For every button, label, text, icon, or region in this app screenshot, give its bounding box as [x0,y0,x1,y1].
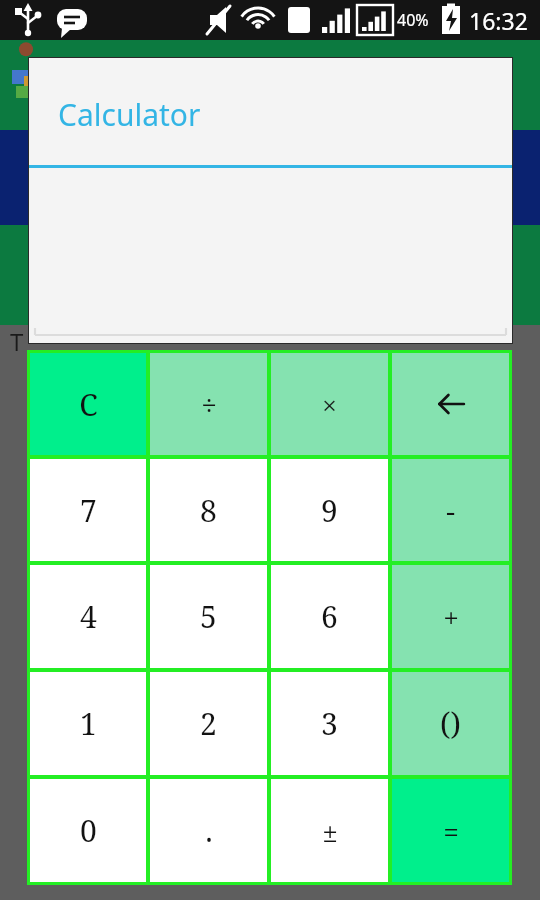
button[interactable]: Clear [30,353,146,455]
button[interactable]: Backspace [392,353,509,455]
staticText: + [443,598,459,636]
staticText: () [440,703,461,744]
staticText: . [205,810,213,851]
button[interactable]: Parentheses [392,672,509,775]
staticText: 1 [80,703,97,744]
staticText: = [443,812,459,850]
staticText: 0 [80,810,97,851]
staticText: Calculator [58,94,201,135]
staticText: ÷ [201,385,217,423]
button[interactable]: 6 [271,565,388,668]
staticText: - [446,491,455,529]
staticText: 6 [321,596,338,637]
staticText: 7 [80,490,97,531]
staticText: × [322,387,337,422]
button[interactable]: Multiply [271,353,388,455]
button[interactable]: Plus minus [271,779,388,882]
button[interactable]: 2 [150,672,267,775]
button[interactable]: 1 [30,672,146,775]
button[interactable]: 8 [150,459,267,561]
staticText: ± [322,812,338,850]
button[interactable]: Equals [392,779,509,882]
staticText: 9 [321,490,338,531]
staticText: T [10,325,24,358]
staticText: 5 [200,596,217,637]
staticText: 2 [200,703,217,744]
button[interactable]: 4 [30,565,146,668]
staticText: 16:32 [469,5,528,36]
button[interactable]: . [150,779,267,882]
button[interactable]: 5 [150,565,267,668]
staticText: 40% [397,9,429,31]
button[interactable]: 3 [271,672,388,775]
button[interactable]: 7 [30,459,146,561]
button[interactable]: Divide [150,353,267,455]
button[interactable]: Plus [392,565,509,668]
staticText: 4 [80,596,97,637]
button[interactable]: 9 [271,459,388,561]
staticText: 8 [200,490,217,531]
button[interactable]: Minus [392,459,509,561]
staticText: C [79,384,98,425]
button[interactable]: 0 [30,779,146,882]
staticText: 3 [321,703,338,744]
